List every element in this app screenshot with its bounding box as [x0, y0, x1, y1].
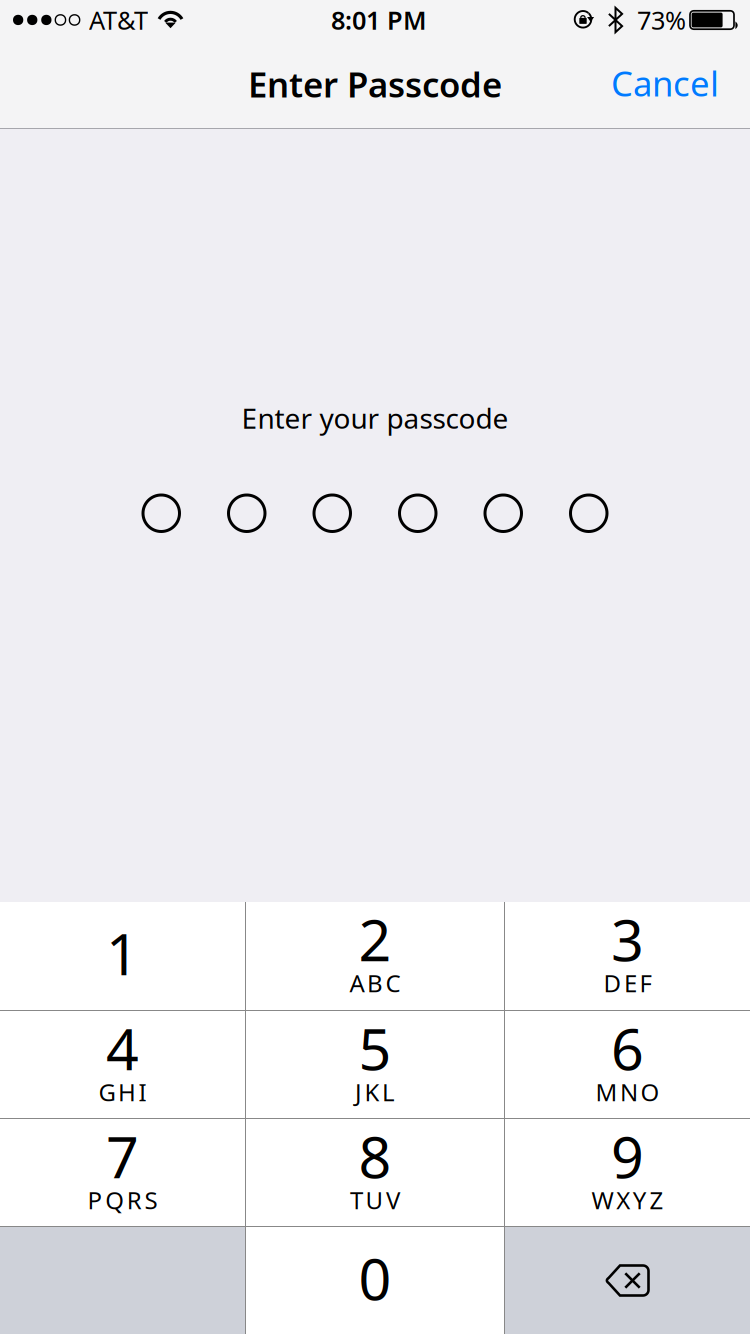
staticText: 0	[358, 1240, 391, 1316]
staticText: 73%	[637, 3, 686, 37]
staticText: 7	[106, 1118, 139, 1194]
staticText: 8:01 PM	[331, 3, 427, 37]
button[interactable]: 8 TUV	[246, 1119, 504, 1227]
staticText: Cancel	[611, 60, 719, 106]
button[interactable]: 1	[0, 902, 245, 1011]
staticText: MNO	[595, 1076, 660, 1108]
staticText: 3	[611, 901, 644, 977]
staticText: Enter your passcode	[241, 399, 508, 437]
staticText: 8	[358, 1118, 391, 1194]
staticText: GHI	[98, 1076, 147, 1108]
button[interactable]: 7 PQRS	[0, 1119, 245, 1227]
button[interactable]: 9 WXYZ	[505, 1119, 750, 1227]
button[interactable]: Delete	[505, 1227, 750, 1334]
staticText: WXYZ	[592, 1184, 663, 1216]
staticText: AT&T	[89, 3, 148, 37]
staticText: 4	[106, 1010, 139, 1086]
staticText: 1	[106, 915, 139, 991]
staticText: 2	[358, 901, 391, 977]
staticText: JKL	[355, 1076, 395, 1108]
staticText: ABC	[349, 967, 401, 999]
staticText: 6	[611, 1010, 644, 1086]
button[interactable]: 4 GHI	[0, 1011, 245, 1119]
staticText: Enter Passcode	[248, 61, 502, 107]
staticText: PQRS	[88, 1184, 157, 1216]
button[interactable]: 0	[246, 1227, 504, 1334]
button[interactable]: Cancel	[593, 46, 737, 120]
button[interactable]: 3 DEF	[505, 902, 750, 1011]
staticText: DEF	[603, 967, 652, 999]
button[interactable]: 5 JKL	[246, 1011, 504, 1119]
staticText: 9	[611, 1118, 644, 1194]
staticText: 5	[358, 1010, 391, 1086]
button[interactable]: 6 MNO	[505, 1011, 750, 1119]
button[interactable]: 2 ABC	[246, 902, 504, 1011]
staticText: TUV	[350, 1184, 400, 1216]
